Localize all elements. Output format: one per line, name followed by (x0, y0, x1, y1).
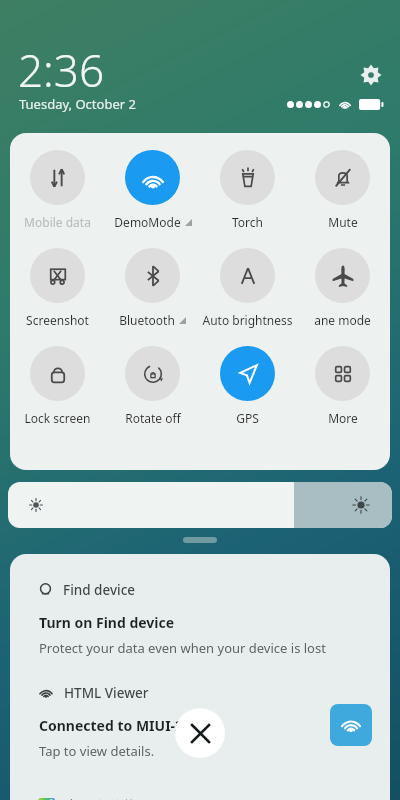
button[interactable]: Mute (295, 150, 390, 230)
staticText: 主题自动截屏 (66, 798, 150, 800)
button[interactable]: Wi-Fi (330, 704, 372, 746)
staticText: More (328, 410, 358, 426)
button[interactable]: Lock screen (10, 346, 105, 426)
staticText: Protect your data even when your device … (39, 639, 326, 657)
button[interactable]: Brightness (8, 482, 392, 528)
staticText: Tap to view details. (39, 742, 155, 760)
button[interactable]: Find device (10, 581, 390, 599)
staticText: Tuesday, October 2 (19, 95, 136, 113)
staticText: Find device (63, 581, 136, 599)
staticText: Bluetooth (119, 312, 175, 328)
staticText: DemoMode (114, 214, 181, 230)
button[interactable]: Mobile data (10, 150, 105, 230)
button[interactable]: Screenshot (10, 248, 105, 328)
button[interactable]: Rotate off (105, 346, 200, 426)
staticText: Screenshot (26, 312, 89, 328)
staticText: Lock screen (24, 410, 91, 426)
staticText: Auto brightness (202, 312, 293, 328)
staticText: Torch (232, 214, 263, 230)
staticText: ane mode (314, 312, 371, 328)
staticText: GPS (236, 410, 259, 426)
button[interactable]: Torch (200, 150, 295, 230)
button[interactable]: Close (175, 708, 225, 758)
staticText: Rotate off (125, 410, 181, 426)
button[interactable]: Settings (356, 60, 386, 90)
button[interactable]: More (295, 346, 390, 426)
button[interactable]: Auto brightness (200, 248, 295, 328)
staticText: Connected to MIUI-2 (39, 716, 184, 735)
staticText: Mute (328, 214, 358, 230)
button[interactable]: ane mode (295, 248, 390, 328)
button[interactable]: DemoMode (105, 150, 200, 230)
staticText: Mobile data (24, 214, 91, 230)
button[interactable]: GPS (200, 346, 295, 426)
button[interactable]: Bluetooth (105, 248, 200, 328)
staticText: HTML Viewer (64, 684, 149, 702)
staticText: 2:36 (18, 40, 105, 100)
staticText: Turn on Find device (39, 613, 175, 632)
button[interactable]: HTML Viewer (10, 684, 390, 702)
